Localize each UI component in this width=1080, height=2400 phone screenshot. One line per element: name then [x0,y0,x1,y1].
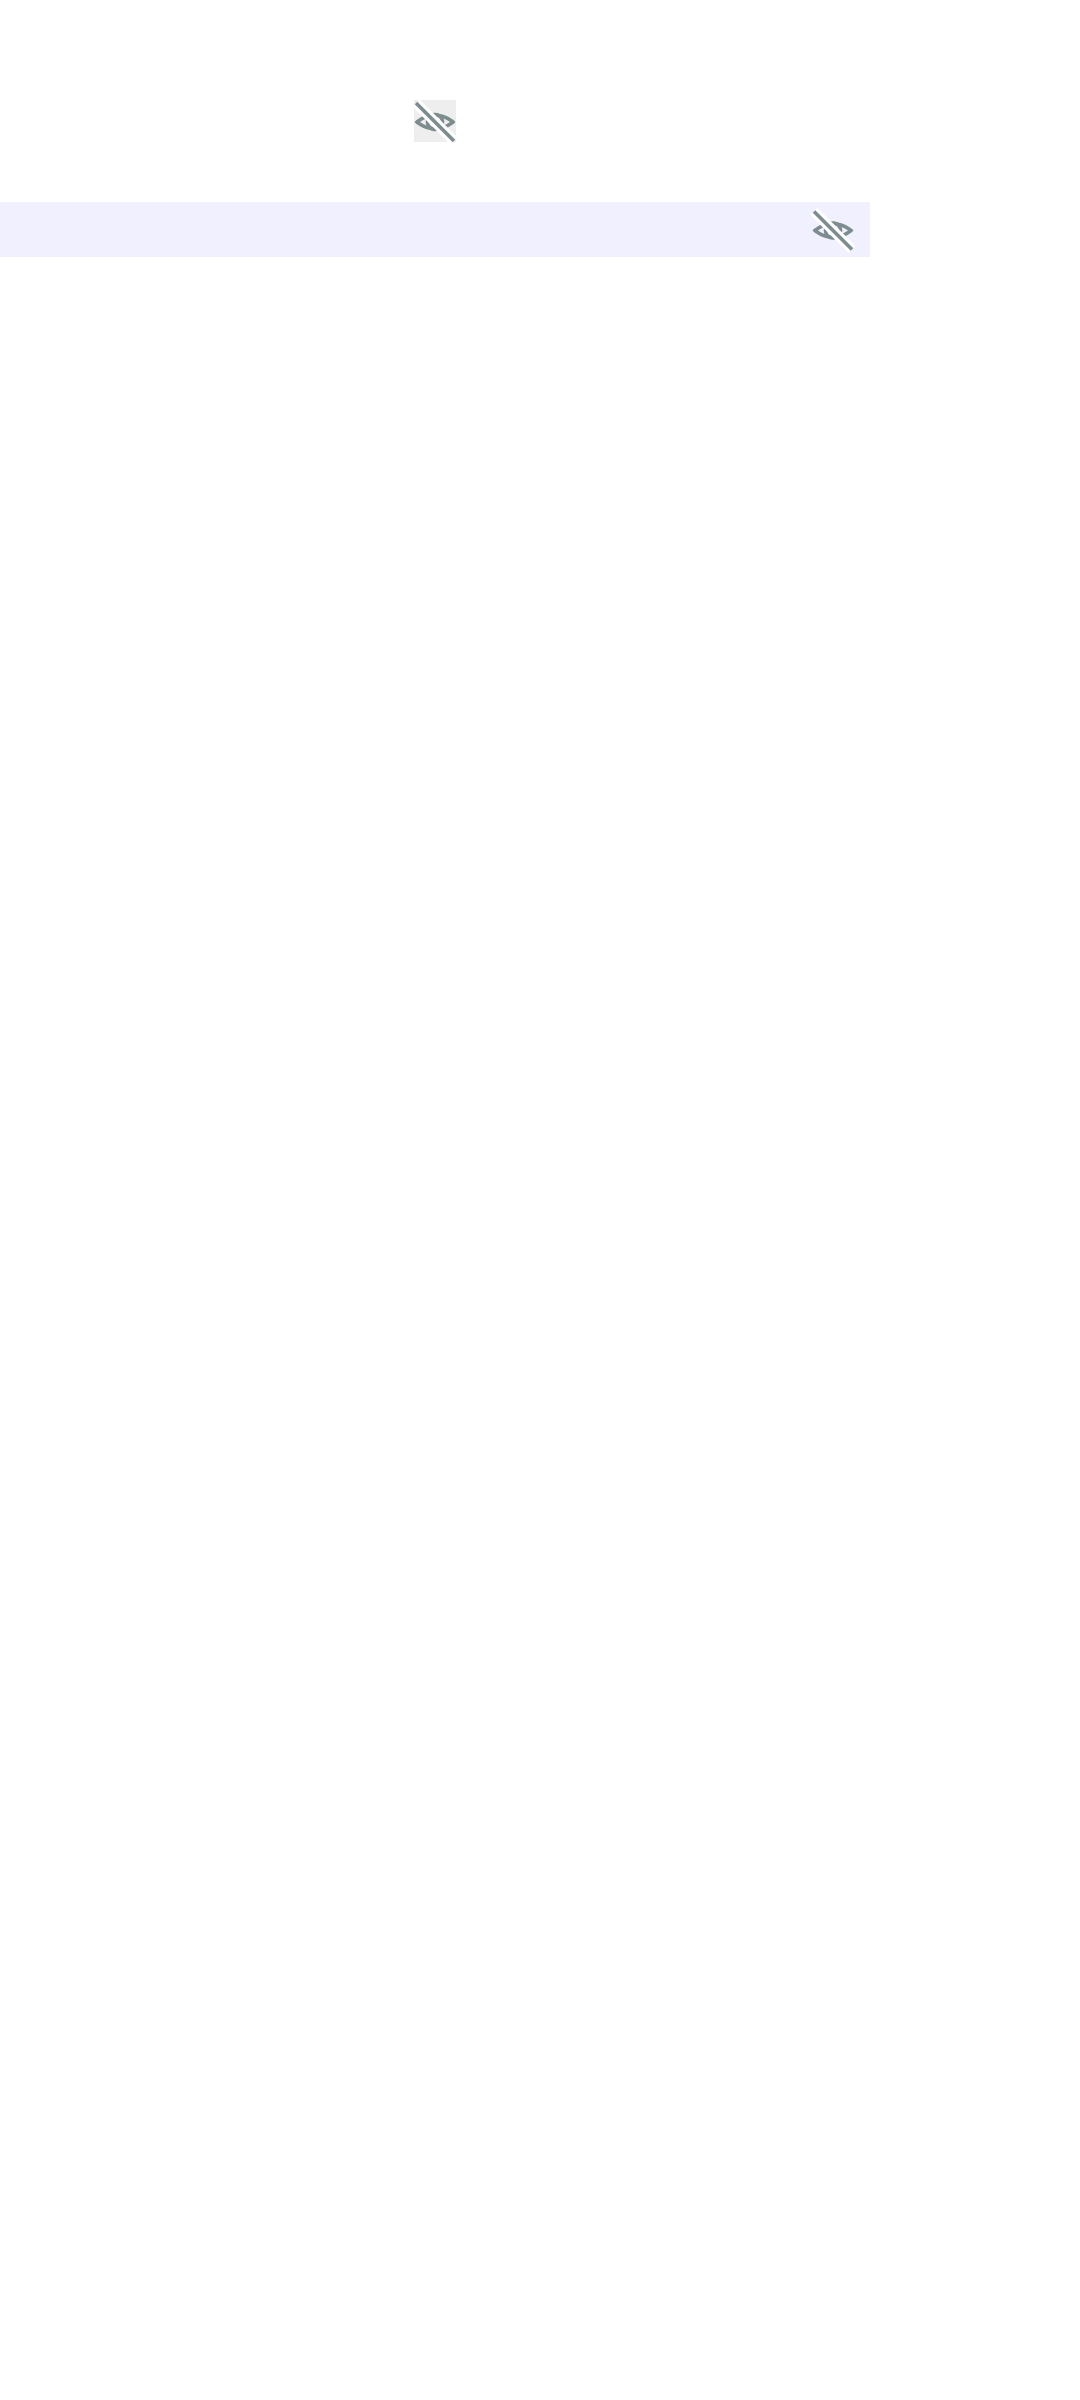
button[interactable] [800,202,870,256]
